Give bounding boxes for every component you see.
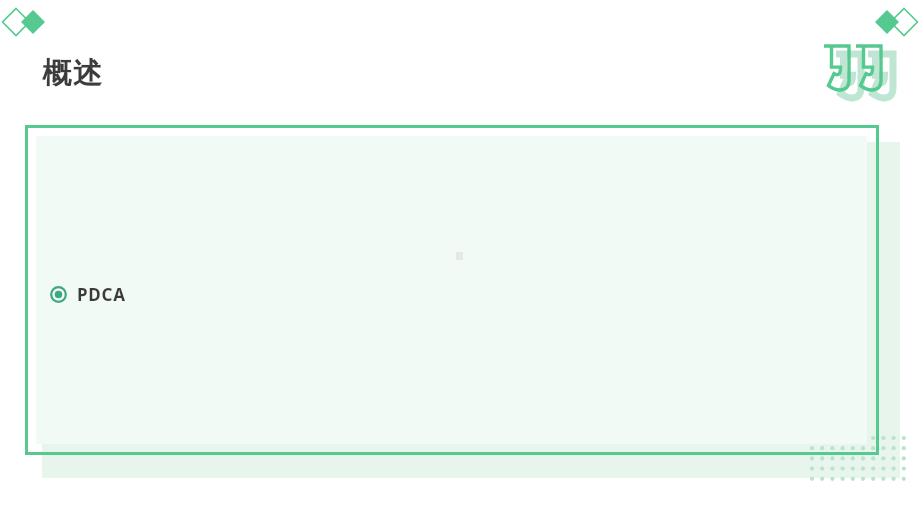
staticText: PDCA bbox=[77, 283, 126, 306]
button[interactable]: PDCA bbox=[50, 283, 126, 306]
button[interactable]: 概述 bbox=[42, 55, 102, 92]
staticText: 概述 bbox=[42, 55, 102, 92]
